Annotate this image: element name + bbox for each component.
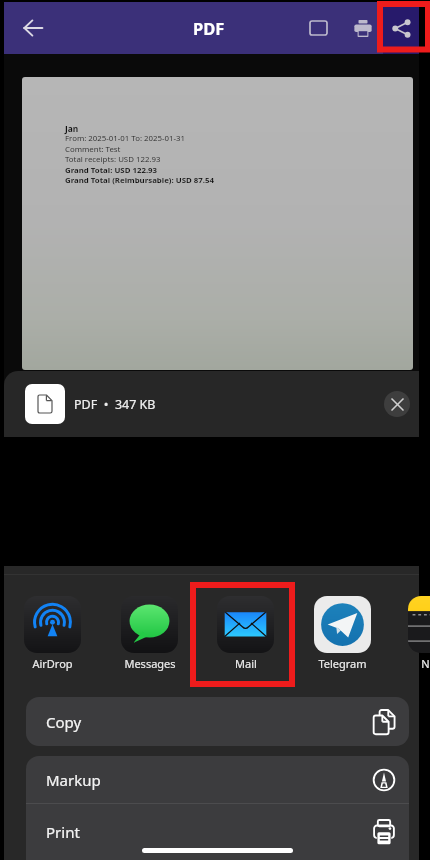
- staticText: Copy: [46, 712, 82, 732]
- staticText: Telegram: [318, 656, 367, 671]
- button[interactable]: Close: [384, 391, 410, 417]
- button[interactable]: Page fit: [296, 6, 340, 50]
- staticText: Notes: [421, 656, 430, 671]
- button[interactable]: Messages: [121, 596, 178, 653]
- staticText: Total receipts: USD 122.93: [65, 154, 161, 165]
- button[interactable]: Mail: [217, 596, 274, 653]
- staticText: From: 2025-01-01 To: 2025-01-31: [65, 133, 186, 144]
- staticText: Grand Total: USD 122.93: [65, 165, 158, 176]
- button[interactable]: Markup: [26, 756, 409, 803]
- staticText: Comment: Test: [65, 144, 121, 155]
- button[interactable]: Copy: [26, 697, 409, 746]
- staticText: Print: [46, 822, 80, 842]
- staticText: Jan: [65, 123, 79, 134]
- button[interactable]: Print: [26, 804, 409, 859]
- staticText: PDF: [193, 17, 225, 39]
- button[interactable]: Back: [11, 6, 55, 50]
- button[interactable]: Telegram: [314, 596, 371, 653]
- staticText: Mail: [235, 656, 257, 671]
- staticText: AirDrop: [32, 656, 73, 671]
- button[interactable]: Print: [341, 6, 385, 50]
- staticText: Grand Total (Reimbursable): USD 87.54: [65, 175, 214, 186]
- button[interactable]: Notes: [408, 596, 430, 653]
- staticText: PDF • 347 KB: [74, 396, 156, 413]
- staticText: Messages: [124, 656, 176, 671]
- button[interactable]: AirDrop: [24, 596, 81, 653]
- button[interactable]: Share: [383, 2, 419, 54]
- staticText: Markup: [46, 770, 101, 790]
